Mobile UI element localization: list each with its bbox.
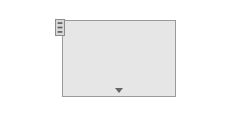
button[interactable]: Scroll: [62, 20, 176, 97]
staticText: 7: [105, 61, 119, 95]
button[interactable]: Scroll down: [62, 83, 176, 97]
button[interactable]: Move equation: [55, 19, 65, 36]
button[interactable]: 1: [62, 20, 176, 97]
